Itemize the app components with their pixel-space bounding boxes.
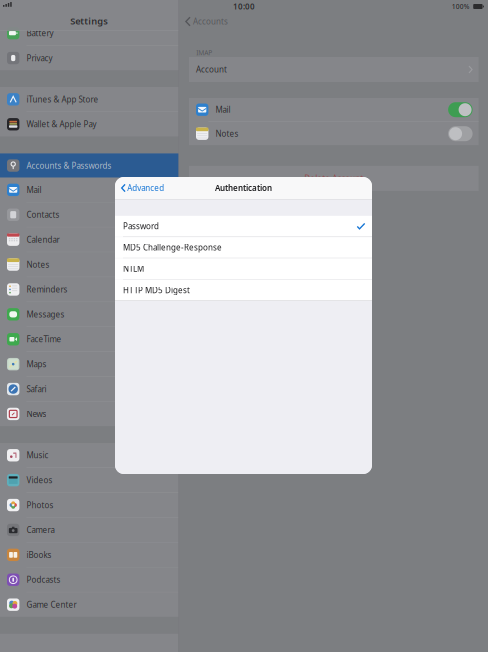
staticText: 10:00: [233, 1, 255, 12]
button[interactable]: Photos: [0, 493, 179, 517]
button[interactable]: Music: [0, 443, 179, 467]
staticText: Settings: [70, 15, 108, 27]
staticText: iBooks: [26, 549, 51, 560]
staticText: Safari: [26, 384, 46, 394]
staticText: MD5 Challenge-Response: [123, 242, 222, 253]
staticText: Camera: [26, 525, 54, 535]
staticText: FaceTime: [26, 334, 61, 344]
button[interactable]: FaceTime: [0, 327, 179, 351]
staticText: HTTP MD5 Digest: [123, 285, 190, 295]
button[interactable]: iTunes & App Store: [0, 87, 179, 111]
staticText: iTunes & App Store: [26, 94, 98, 105]
button[interactable]: iBooks: [0, 543, 179, 567]
staticText: Notes: [26, 259, 49, 270]
button[interactable]: Accounts: [179, 13, 233, 30]
staticText: Notes: [215, 128, 238, 139]
button[interactable]: Podcasts: [0, 568, 179, 592]
staticText: Delete Account: [304, 173, 363, 184]
staticText: Advanced: [127, 183, 164, 193]
button[interactable]: News: [0, 402, 179, 426]
staticText: Password: [123, 221, 159, 231]
staticText: Photos: [26, 500, 53, 510]
button[interactable]: Game Center: [0, 592, 179, 617]
staticText: Authentication: [215, 183, 272, 193]
button[interactable]: Messages: [0, 302, 179, 326]
staticText: Accounts & Passwords: [26, 160, 111, 171]
staticText: Videos: [26, 475, 52, 485]
staticText: Music: [26, 450, 48, 460]
button[interactable]: Mail: [0, 178, 179, 202]
button[interactable]: Camera: [0, 518, 179, 542]
staticText: Messages: [26, 309, 64, 320]
button[interactable]: HTTP MD5 Digest: [115, 280, 372, 300]
staticText: Mail: [26, 184, 41, 195]
staticText: Contacts: [26, 209, 59, 220]
button[interactable]: Account: [189, 57, 479, 82]
button[interactable]: Battery: [0, 21, 179, 45]
staticText: 100%: [452, 2, 470, 11]
button[interactable]: Accounts & Passwords: [0, 153, 179, 178]
staticText: Accounts: [193, 16, 228, 27]
button[interactable]: NTLM: [115, 258, 372, 279]
staticText: Battery: [26, 28, 53, 38]
button[interactable]: Privacy: [0, 46, 179, 70]
staticText: Calendar: [26, 234, 59, 245]
staticText: IMAP: [196, 48, 212, 57]
button[interactable]: Wallet & Apple Pay: [0, 112, 179, 136]
staticText: Maps: [26, 359, 46, 369]
staticText: NTLM: [123, 263, 144, 274]
button[interactable]: Videos: [0, 468, 179, 492]
button[interactable]: Maps: [0, 352, 179, 376]
button[interactable]: MD5 Challenge-Response: [115, 237, 372, 258]
staticText: Podcasts: [26, 574, 60, 585]
button[interactable]: Safari: [0, 377, 179, 401]
staticText: Reminders: [26, 284, 67, 295]
button[interactable]: Calendar: [0, 227, 179, 252]
button[interactable]: Advanced: [115, 177, 170, 199]
button[interactable]: Reminders: [0, 277, 179, 302]
staticText: Mail: [215, 104, 230, 115]
staticText: Account: [196, 64, 227, 75]
staticText: Game Center: [26, 599, 76, 610]
staticText: Wallet & Apple Pay: [26, 119, 96, 129]
button[interactable]: Notes: [0, 252, 179, 277]
staticText: Privacy: [26, 53, 52, 63]
staticText: News: [26, 409, 46, 419]
button[interactable]: Password: [115, 216, 372, 236]
button[interactable]: Delete Account: [189, 166, 479, 191]
button[interactable]: Contacts: [0, 203, 179, 227]
